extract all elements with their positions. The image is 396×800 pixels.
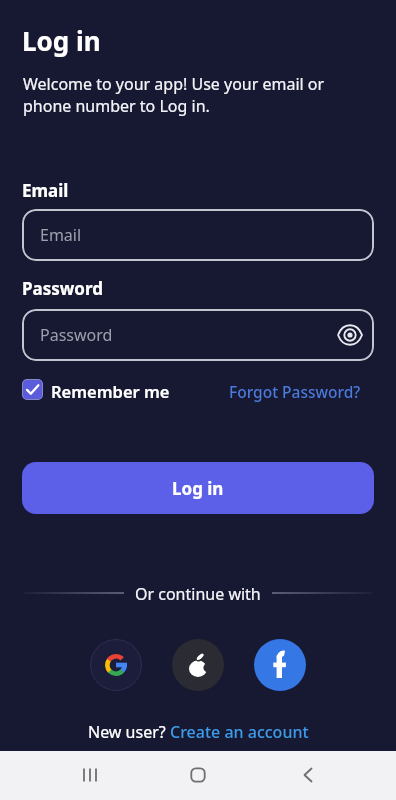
staticText: Or continue with	[135, 583, 261, 605]
staticText: Email	[22, 179, 69, 202]
button[interactable]: Create an account	[170, 721, 309, 743]
staticText: New user?	[88, 721, 170, 743]
staticText: Log in	[172, 477, 224, 500]
button[interactable]: Password	[22, 309, 374, 361]
button[interactable]	[22, 379, 43, 400]
button[interactable]	[337, 322, 363, 348]
button[interactable]: Log in	[22, 462, 374, 514]
staticText: Password	[40, 324, 113, 346]
button[interactable]	[182, 759, 214, 791]
button[interactable]	[90, 639, 142, 691]
button[interactable]	[74, 759, 106, 791]
button[interactable]: Forgot Password?	[229, 381, 361, 402]
button[interactable]	[254, 639, 306, 691]
button[interactable]	[292, 759, 324, 791]
staticText: Email	[40, 224, 82, 246]
staticText: Password	[22, 277, 103, 300]
staticText: Log in	[22, 23, 101, 58]
staticText: Welcome to your app! Use your email or p…	[23, 73, 325, 117]
staticText: Remember me	[51, 380, 170, 402]
button[interactable]	[172, 639, 224, 691]
button[interactable]: Email	[22, 209, 374, 261]
